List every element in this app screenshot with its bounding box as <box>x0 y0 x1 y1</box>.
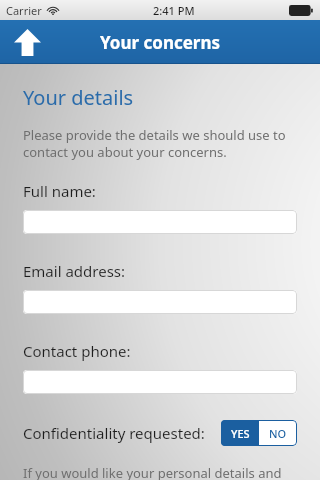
button[interactable]: Home <box>11 27 43 57</box>
staticText: Contact phone: <box>23 341 131 361</box>
staticText: Your details <box>23 84 134 111</box>
staticText: NO <box>269 426 287 441</box>
button[interactable]: YES <box>221 420 259 446</box>
staticText: Carrier <box>6 3 42 18</box>
button[interactable]: NO <box>259 420 297 446</box>
staticText: Email address: <box>23 261 126 281</box>
staticText: Please provide the details we should use… <box>23 126 297 161</box>
staticText: 2:41 PM <box>153 3 195 18</box>
staticText: Confidentiality requested: <box>23 423 205 443</box>
staticText: Full name: <box>23 181 96 201</box>
button[interactable] <box>23 370 297 394</box>
staticText: If you would like your personal details … <box>23 464 282 480</box>
button[interactable] <box>23 290 297 314</box>
staticText: YES <box>231 426 250 441</box>
staticText: Your concerns <box>100 31 221 54</box>
button[interactable] <box>23 210 297 234</box>
